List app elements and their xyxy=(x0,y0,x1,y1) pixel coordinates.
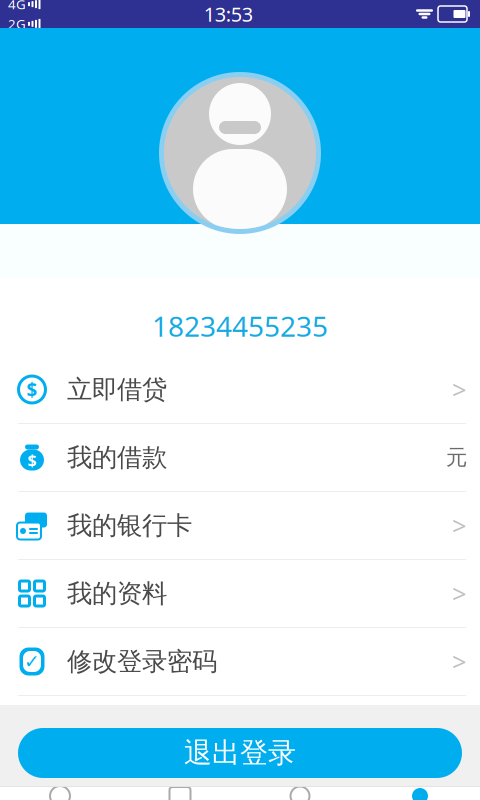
button[interactable]: $ xyxy=(0,356,480,424)
button[interactable]: 退出登录 xyxy=(18,728,462,778)
staticText: $ xyxy=(26,377,37,402)
staticText: > xyxy=(452,645,466,678)
button[interactable]: $ xyxy=(0,424,480,492)
button[interactable]: 我的 xyxy=(360,786,480,800)
button[interactable]: 首页 xyxy=(0,786,120,800)
staticText: 我的资料 xyxy=(67,578,167,609)
staticText: > xyxy=(452,577,466,610)
staticText: 我的银行卡 xyxy=(67,510,192,541)
staticText: 修改登录密码 xyxy=(67,646,217,677)
button[interactable]: 消息 xyxy=(240,786,360,800)
staticText: > xyxy=(452,509,466,542)
staticText: 元 xyxy=(446,444,467,471)
button[interactable]: 我的银行卡 xyxy=(0,492,480,560)
staticText: 2G xyxy=(8,15,26,33)
staticText: > xyxy=(452,373,466,406)
staticText: 18234455235 xyxy=(152,307,328,345)
staticText: 退出登录 xyxy=(184,736,296,770)
button[interactable]: ✓ xyxy=(0,628,480,696)
staticText: 4G xyxy=(8,0,26,13)
staticText: ✓ xyxy=(24,651,40,672)
staticText: 立即借贷 xyxy=(67,374,167,405)
button[interactable]: 我的资料 xyxy=(0,560,480,628)
staticText: 13:53 xyxy=(204,1,253,27)
staticText: 我的借款 xyxy=(67,442,167,473)
button[interactable]: 订单 xyxy=(120,786,240,800)
staticText: $ xyxy=(27,449,36,471)
